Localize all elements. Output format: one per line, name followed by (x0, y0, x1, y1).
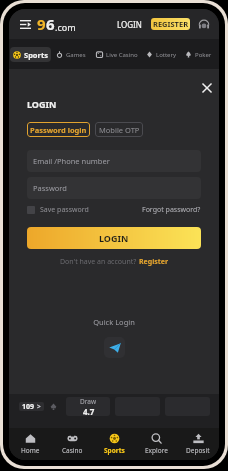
staticText: Forgot password? (142, 205, 201, 215)
staticText: Quick Login (27, 317, 201, 327)
button[interactable]: Menu (18, 17, 32, 31)
button[interactable]: Poker (182, 47, 215, 62)
staticText: REGISTER (153, 19, 189, 29)
staticText: Register (139, 257, 169, 267)
button[interactable]: Customer support (197, 17, 211, 31)
staticText: Password login (30, 125, 87, 135)
button[interactable]: Save password (27, 203, 89, 216)
staticText: Poker (195, 51, 212, 59)
button[interactable]: Password (27, 177, 201, 199)
staticText: Casino (62, 446, 83, 455)
button[interactable]: Register (139, 257, 169, 267)
staticText: LOGIN (99, 232, 129, 244)
staticText: 109 (22, 402, 35, 411)
staticText: 9 (37, 14, 46, 34)
button[interactable]: Draw (66, 397, 110, 416)
button[interactable]: LOGIN (114, 15, 145, 34)
button[interactable]: Lottery (143, 47, 180, 62)
staticText: Draw (80, 397, 97, 406)
staticText: Lottery (156, 51, 177, 59)
staticText: Live Casino (106, 51, 138, 59)
staticText: Sports (24, 50, 48, 60)
staticText: 4.7 (83, 406, 95, 416)
button[interactable]: 109 (19, 402, 44, 411)
staticText: Password (33, 183, 67, 193)
button[interactable]: Live Casino (93, 47, 141, 62)
staticText: Save password (40, 205, 89, 215)
button[interactable]: Forgot password? (142, 203, 201, 216)
button[interactable]: Games (53, 47, 89, 62)
button[interactable]: LOGIN (27, 227, 201, 249)
staticText: Sports (104, 446, 125, 455)
button[interactable]: Deposit (177, 428, 219, 460)
staticText: Deposit (186, 446, 210, 455)
staticText: Don't have an account? (60, 257, 139, 267)
button[interactable]: Casino (51, 428, 93, 460)
staticText: > (37, 402, 41, 411)
staticText: Mobile OTP (99, 125, 140, 135)
button[interactable]: Email /Phone number (27, 150, 201, 172)
staticText: Home (21, 446, 40, 455)
staticText: LOGIN (27, 98, 57, 110)
button[interactable]: Telegram login (104, 337, 125, 358)
staticText: Email /Phone number (33, 156, 110, 166)
button[interactable]: Password login (27, 122, 90, 137)
button[interactable]: Mobile OTP (95, 122, 143, 137)
staticText: LOGIN (117, 19, 142, 30)
button[interactable]: Sports (10, 47, 51, 62)
staticText: Explore (145, 446, 168, 455)
button[interactable]: Sports (93, 428, 135, 460)
staticText: 6 (46, 14, 55, 34)
button[interactable]: REGISTER (151, 18, 190, 30)
button[interactable]: Home (9, 428, 51, 460)
staticText: .com (55, 21, 76, 33)
button[interactable]: Close (198, 79, 216, 97)
staticText: Games (66, 51, 86, 59)
button[interactable]: Explore (135, 428, 177, 460)
